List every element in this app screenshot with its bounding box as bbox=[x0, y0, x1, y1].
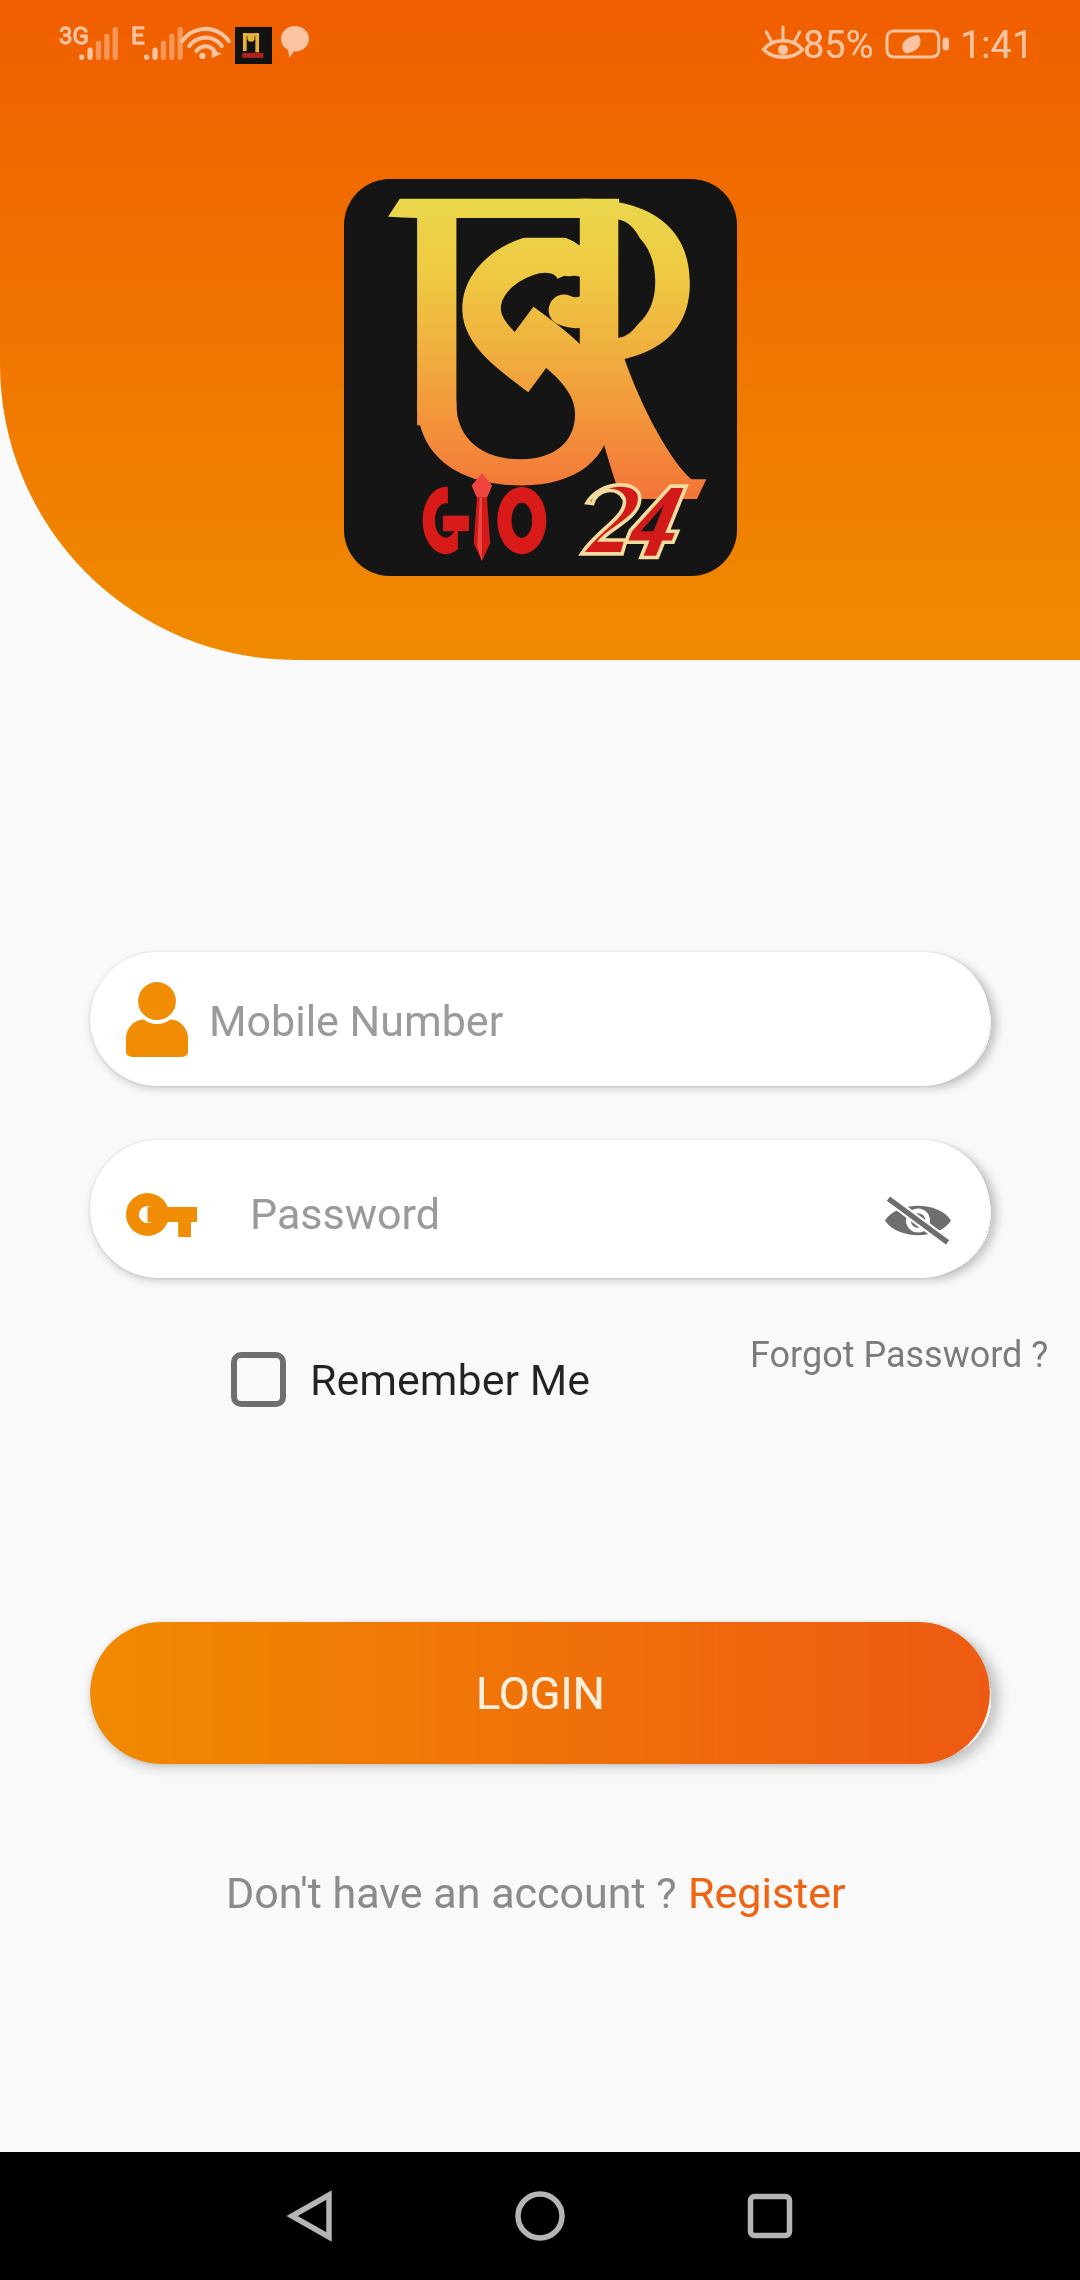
button[interactable]: Show password bbox=[870, 1172, 966, 1268]
staticText: Mobile Number bbox=[209, 996, 504, 1046]
staticText: Don't have an account ? bbox=[226, 1868, 688, 1918]
staticText: Remember Me bbox=[310, 1355, 591, 1405]
staticText: Register bbox=[688, 1868, 846, 1918]
staticText: Password bbox=[250, 1189, 440, 1239]
button[interactable]: Remember Me bbox=[209, 1334, 613, 1425]
staticText: 1:41 bbox=[960, 23, 1034, 68]
button[interactable]: Forgot Password ? bbox=[728, 1318, 1071, 1392]
button[interactable]: Home bbox=[465, 2152, 615, 2280]
button[interactable]: Don't have an account ? bbox=[208, 1852, 864, 1934]
button[interactable]: Password bbox=[90, 1140, 990, 1278]
button[interactable]: Recents bbox=[695, 2152, 845, 2280]
staticText: 3G bbox=[59, 22, 89, 50]
staticText: LOGIN bbox=[476, 1667, 605, 1720]
button[interactable]: Back bbox=[235, 2152, 385, 2280]
button[interactable]: LOGIN bbox=[90, 1622, 990, 1764]
button[interactable]: Mobile Number bbox=[90, 952, 990, 1086]
staticText: 85% bbox=[803, 23, 874, 68]
staticText: E bbox=[131, 22, 145, 50]
staticText: Forgot Password ? bbox=[750, 1334, 1049, 1376]
